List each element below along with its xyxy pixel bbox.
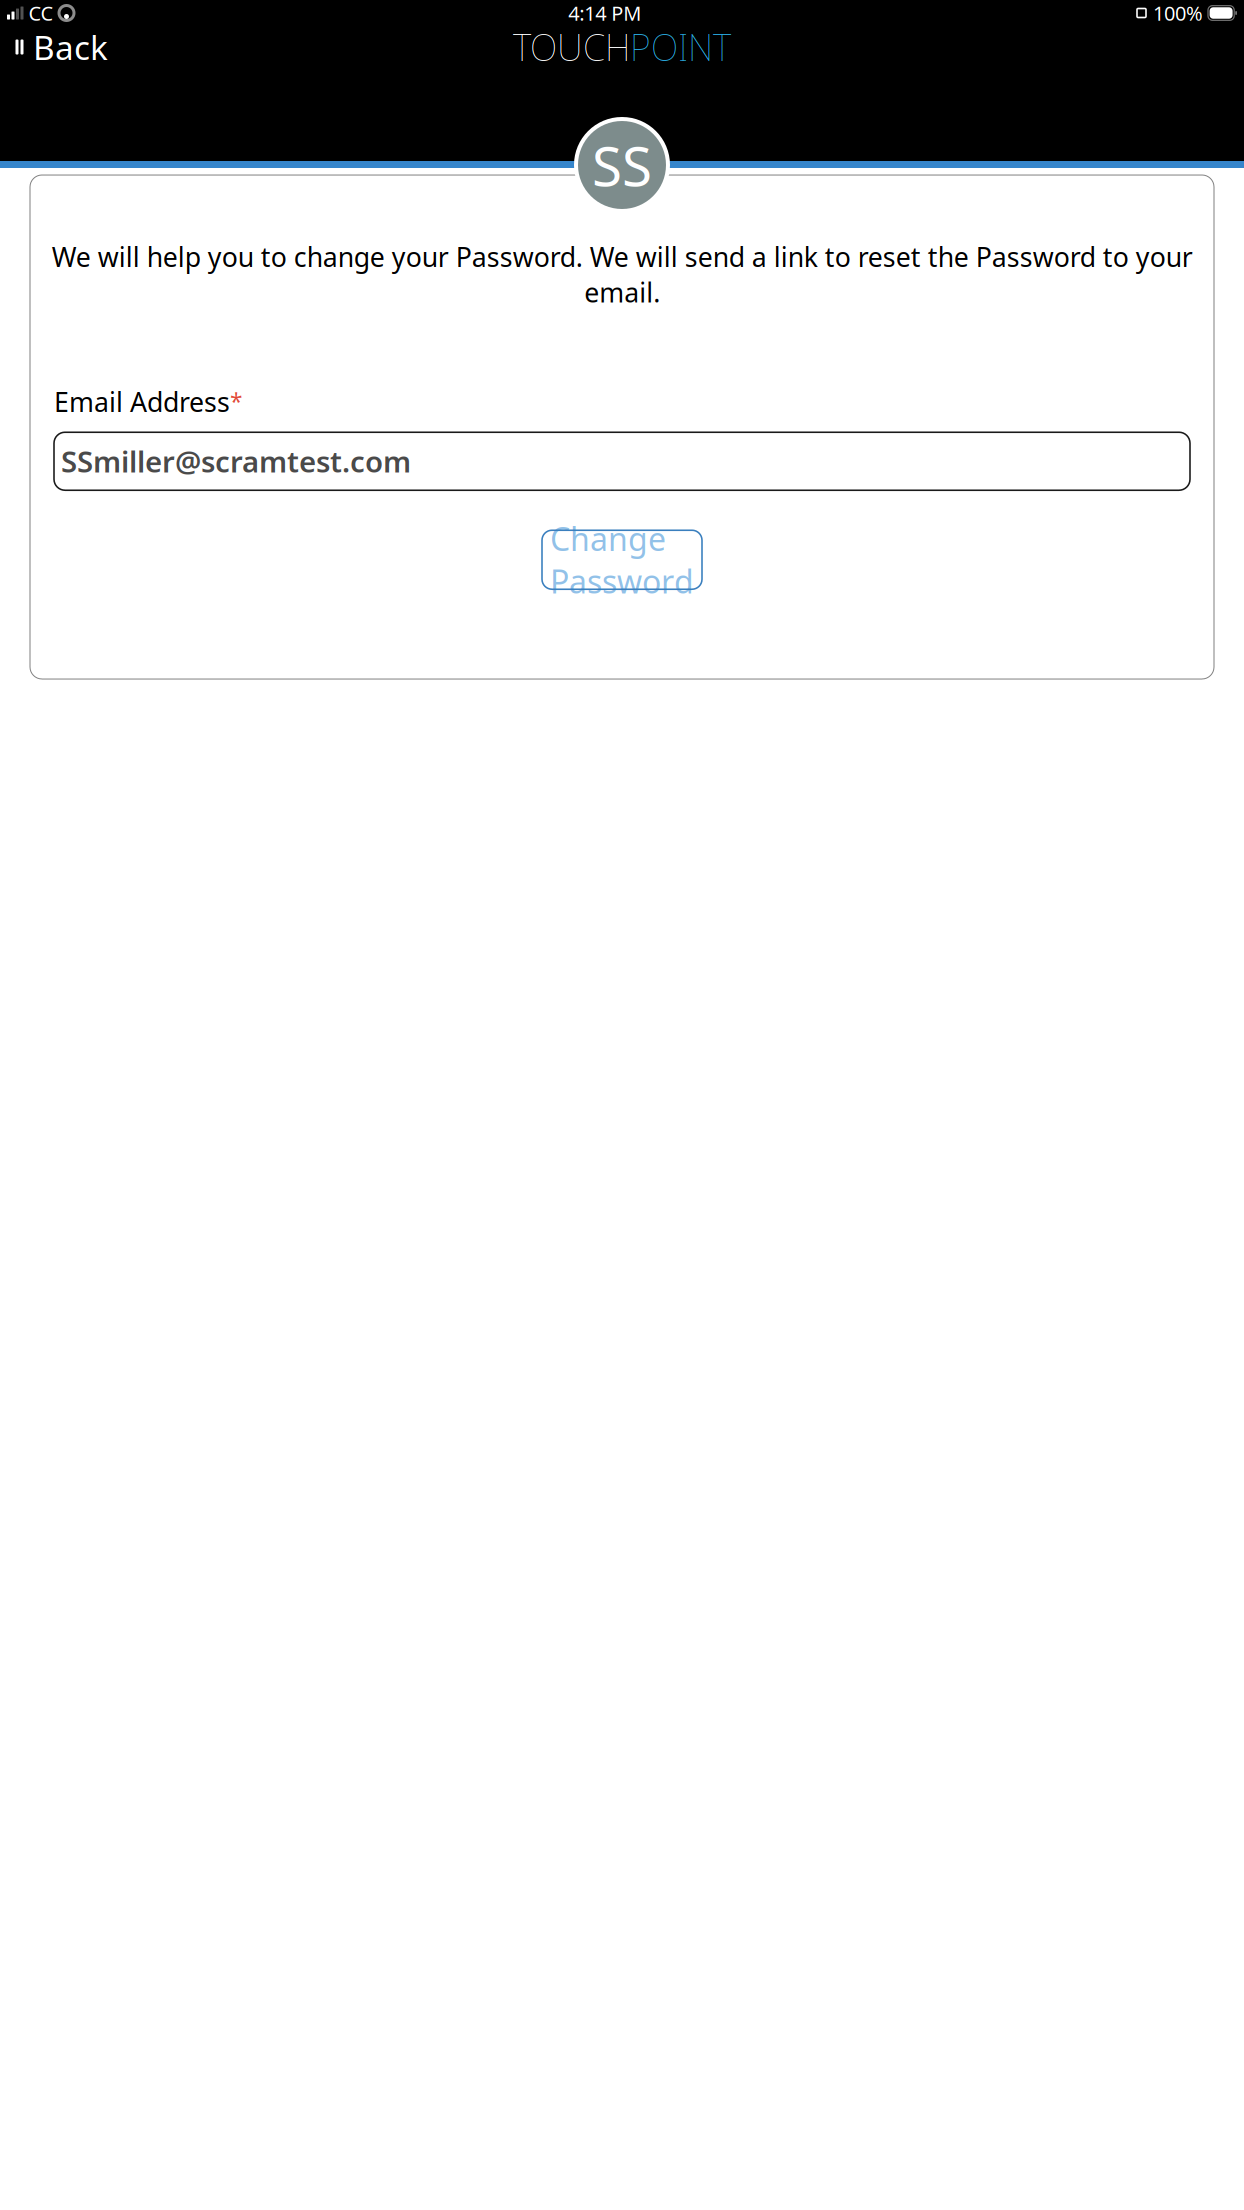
staticText: Back [33,25,108,69]
button[interactable]: Back [0,19,118,75]
staticText: 100% [1153,0,1203,26]
button[interactable]: SSmiller@scramtest.com [54,432,1190,490]
staticText: SSmiller@scramtest.com [61,442,411,481]
staticText: 4:14 PM [568,0,641,26]
staticText: SS [592,129,652,201]
staticText: We will help you to change your Password… [51,239,1192,310]
button[interactable]: Change Password [542,530,702,589]
staticText: TOUCH [513,23,630,71]
staticText: * [230,386,242,417]
staticText: POINT [630,23,731,71]
staticText: Change Password [550,517,694,602]
staticText: Email Address [54,384,230,419]
staticText: CC [28,0,53,26]
